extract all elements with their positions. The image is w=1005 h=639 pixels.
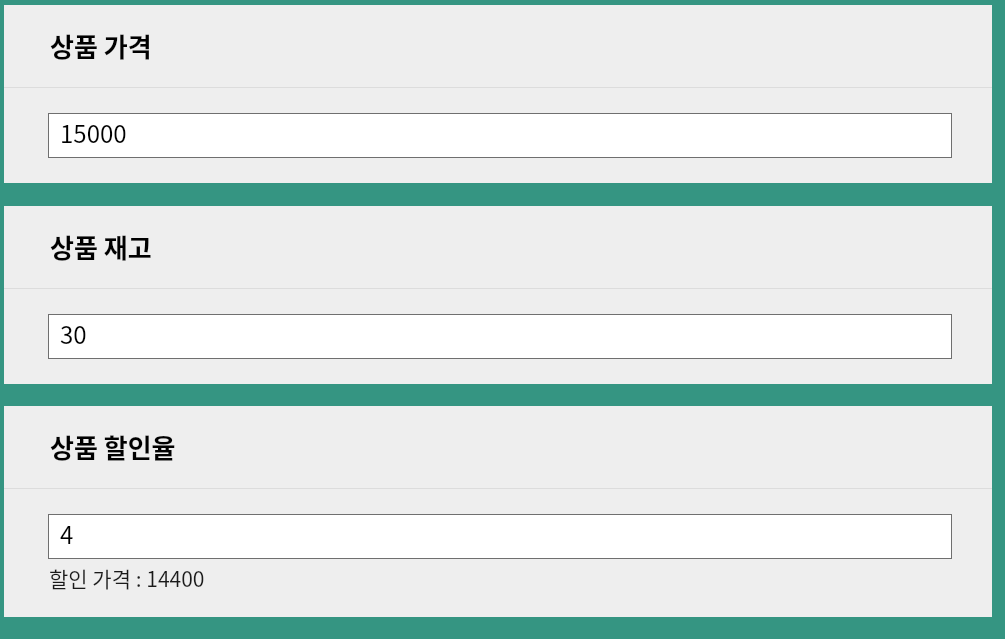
button[interactable]: 상품 할인율 — [48, 514, 952, 559]
staticText: 상품 할인율 — [50, 428, 176, 466]
staticText: 15000 — [60, 115, 127, 150]
button[interactable]: 상품 가격 — [4, 5, 992, 87]
staticText: 상품 가격 — [50, 27, 152, 65]
button[interactable]: 상품 재고 — [4, 206, 992, 288]
staticText: 4 — [60, 516, 74, 551]
staticText: 30 — [60, 316, 87, 351]
staticText: 할인 가격 : 14400 — [49, 563, 205, 593]
button[interactable]: 상품 재고 — [48, 314, 952, 359]
staticText: 상품 재고 — [50, 228, 152, 266]
button[interactable]: 상품 할인율 — [4, 406, 992, 488]
button[interactable]: 상품 가격 — [48, 113, 952, 158]
